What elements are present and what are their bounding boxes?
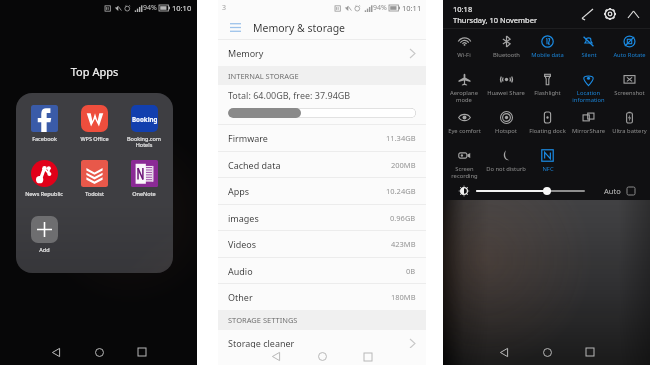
staticText: Ultra battery — [612, 127, 647, 135]
button[interactable]: Location information — [568, 67, 609, 105]
button[interactable]: Silent — [568, 29, 609, 67]
staticText: MirrorShare — [572, 127, 605, 135]
staticText: 94% — [373, 3, 387, 13]
staticText: Huawei Share — [487, 89, 525, 97]
staticText: Apps — [228, 185, 250, 197]
button[interactable]: images — [218, 205, 426, 231]
staticText: Auto — [604, 186, 621, 196]
button[interactable]: Back — [266, 348, 286, 365]
staticText: Auto Rotate — [613, 51, 646, 59]
button[interactable]: Flashlight — [527, 67, 568, 105]
staticText: Aeroplane mode — [450, 89, 478, 104]
button[interactable]: Recents — [358, 348, 378, 365]
button[interactable]: Screen recording — [443, 143, 485, 181]
staticText: 94% — [143, 3, 157, 13]
staticText: News Republic — [25, 190, 63, 197]
staticText: Location information — [572, 89, 605, 104]
staticText: Firmware — [228, 132, 268, 144]
staticText: Screen recording — [451, 165, 478, 180]
button[interactable]: News Republic — [21, 160, 67, 197]
staticText: Booking.com Hotels — [127, 135, 161, 149]
staticText: 10:11 — [402, 3, 422, 13]
staticText: 11.34GB — [386, 133, 416, 143]
staticText: Memory — [228, 47, 264, 59]
staticText: Audio — [228, 265, 253, 277]
staticText: 0.96GB — [390, 213, 416, 223]
staticText: NFC — [542, 165, 554, 173]
button[interactable]: Audio — [218, 258, 426, 284]
staticText: 10:18 — [453, 4, 473, 14]
button[interactable]: MirrorShare — [568, 105, 609, 143]
button[interactable]: Screenshot — [609, 67, 650, 105]
staticText: STORAGE SETTINGS — [228, 315, 298, 325]
button[interactable]: Settings — [601, 5, 619, 23]
button[interactable] — [16, 93, 173, 273]
staticText: Bluetooth — [493, 51, 520, 59]
button[interactable]: Ultra battery — [609, 105, 650, 143]
button[interactable]: Menu — [227, 19, 244, 36]
button[interactable]: Home — [537, 342, 557, 362]
staticText: INTERNAL STORAGE — [228, 71, 299, 81]
button[interactable]: Recents — [580, 342, 600, 362]
staticText: 10:10 — [172, 3, 192, 13]
button[interactable]: Memory — [218, 40, 426, 66]
staticText: Floating dock — [529, 127, 566, 135]
button[interactable]: Back — [46, 342, 66, 362]
button[interactable]: OneNote — [121, 160, 167, 197]
staticText: Flashlight — [534, 89, 561, 97]
button[interactable]: Auto brightness — [627, 187, 635, 195]
button[interactable]: Booking — [121, 105, 167, 149]
button[interactable]: Do not disturb — [485, 143, 527, 181]
staticText: Silent — [581, 51, 597, 59]
button[interactable]: Videos — [218, 231, 426, 257]
button[interactable]: Huawei Share — [485, 67, 527, 105]
staticText: Booking — [132, 115, 158, 123]
staticText: OneNote — [132, 190, 156, 197]
staticText: Total: 64.00GB, free: 37.94GB — [228, 89, 351, 101]
staticText: Facebook — [32, 135, 57, 142]
staticText: 10.24GB — [386, 186, 416, 196]
button[interactable]: Home — [312, 348, 332, 365]
staticText: Top Apps — [0, 64, 189, 79]
button[interactable]: Bluetooth — [485, 29, 527, 67]
staticText: Add — [39, 246, 50, 253]
button[interactable]: Back — [494, 342, 514, 362]
button[interactable]: Collapse — [624, 5, 642, 23]
staticText: 180MB — [391, 292, 416, 302]
staticText: Storage cleaner — [228, 337, 295, 349]
button[interactable]: Facebook — [21, 105, 67, 142]
button[interactable]: Recents — [132, 342, 152, 362]
button[interactable]: Edit — [578, 5, 596, 23]
staticText: Wi-Fi — [457, 51, 471, 59]
button[interactable]: Mobile data — [527, 29, 568, 67]
staticText: Other — [228, 291, 253, 303]
button[interactable]: Add — [21, 216, 67, 253]
button[interactable]: Aeroplane mode — [443, 67, 485, 105]
button[interactable]: Floating dock — [527, 105, 568, 143]
button[interactable]: Storage cleaner — [218, 330, 426, 356]
button[interactable]: Auto Rotate — [609, 29, 650, 67]
button[interactable]: Hotspot — [485, 105, 527, 143]
button[interactable]: Todoist — [71, 160, 117, 197]
staticText: Todoist — [85, 190, 104, 197]
button[interactable]: NFC — [527, 143, 568, 181]
staticText: Cached data — [228, 159, 281, 171]
button[interactable]: Cached data — [218, 152, 426, 177]
staticText: Videos — [228, 238, 257, 250]
button[interactable]: Home — [89, 342, 109, 362]
staticText: Mobile data — [531, 51, 564, 59]
button[interactable]: Wi-Fi — [443, 29, 485, 67]
button[interactable]: Eye comfort — [443, 105, 485, 143]
staticText: 200MB — [391, 160, 416, 170]
staticText: Screenshot — [614, 89, 645, 97]
staticText: Memory & storage — [253, 21, 346, 35]
button[interactable]: Other — [218, 284, 426, 310]
staticText: Thursday, 10 November — [453, 15, 538, 25]
staticText: Eye comfort — [448, 127, 481, 135]
button[interactable]: WPS Office — [71, 105, 117, 142]
staticText: WPS Office — [80, 135, 109, 142]
staticText: 0B — [406, 266, 416, 276]
button[interactable]: Firmware — [218, 125, 426, 150]
staticText: 3 — [222, 3, 227, 13]
button[interactable]: Apps — [218, 178, 426, 204]
